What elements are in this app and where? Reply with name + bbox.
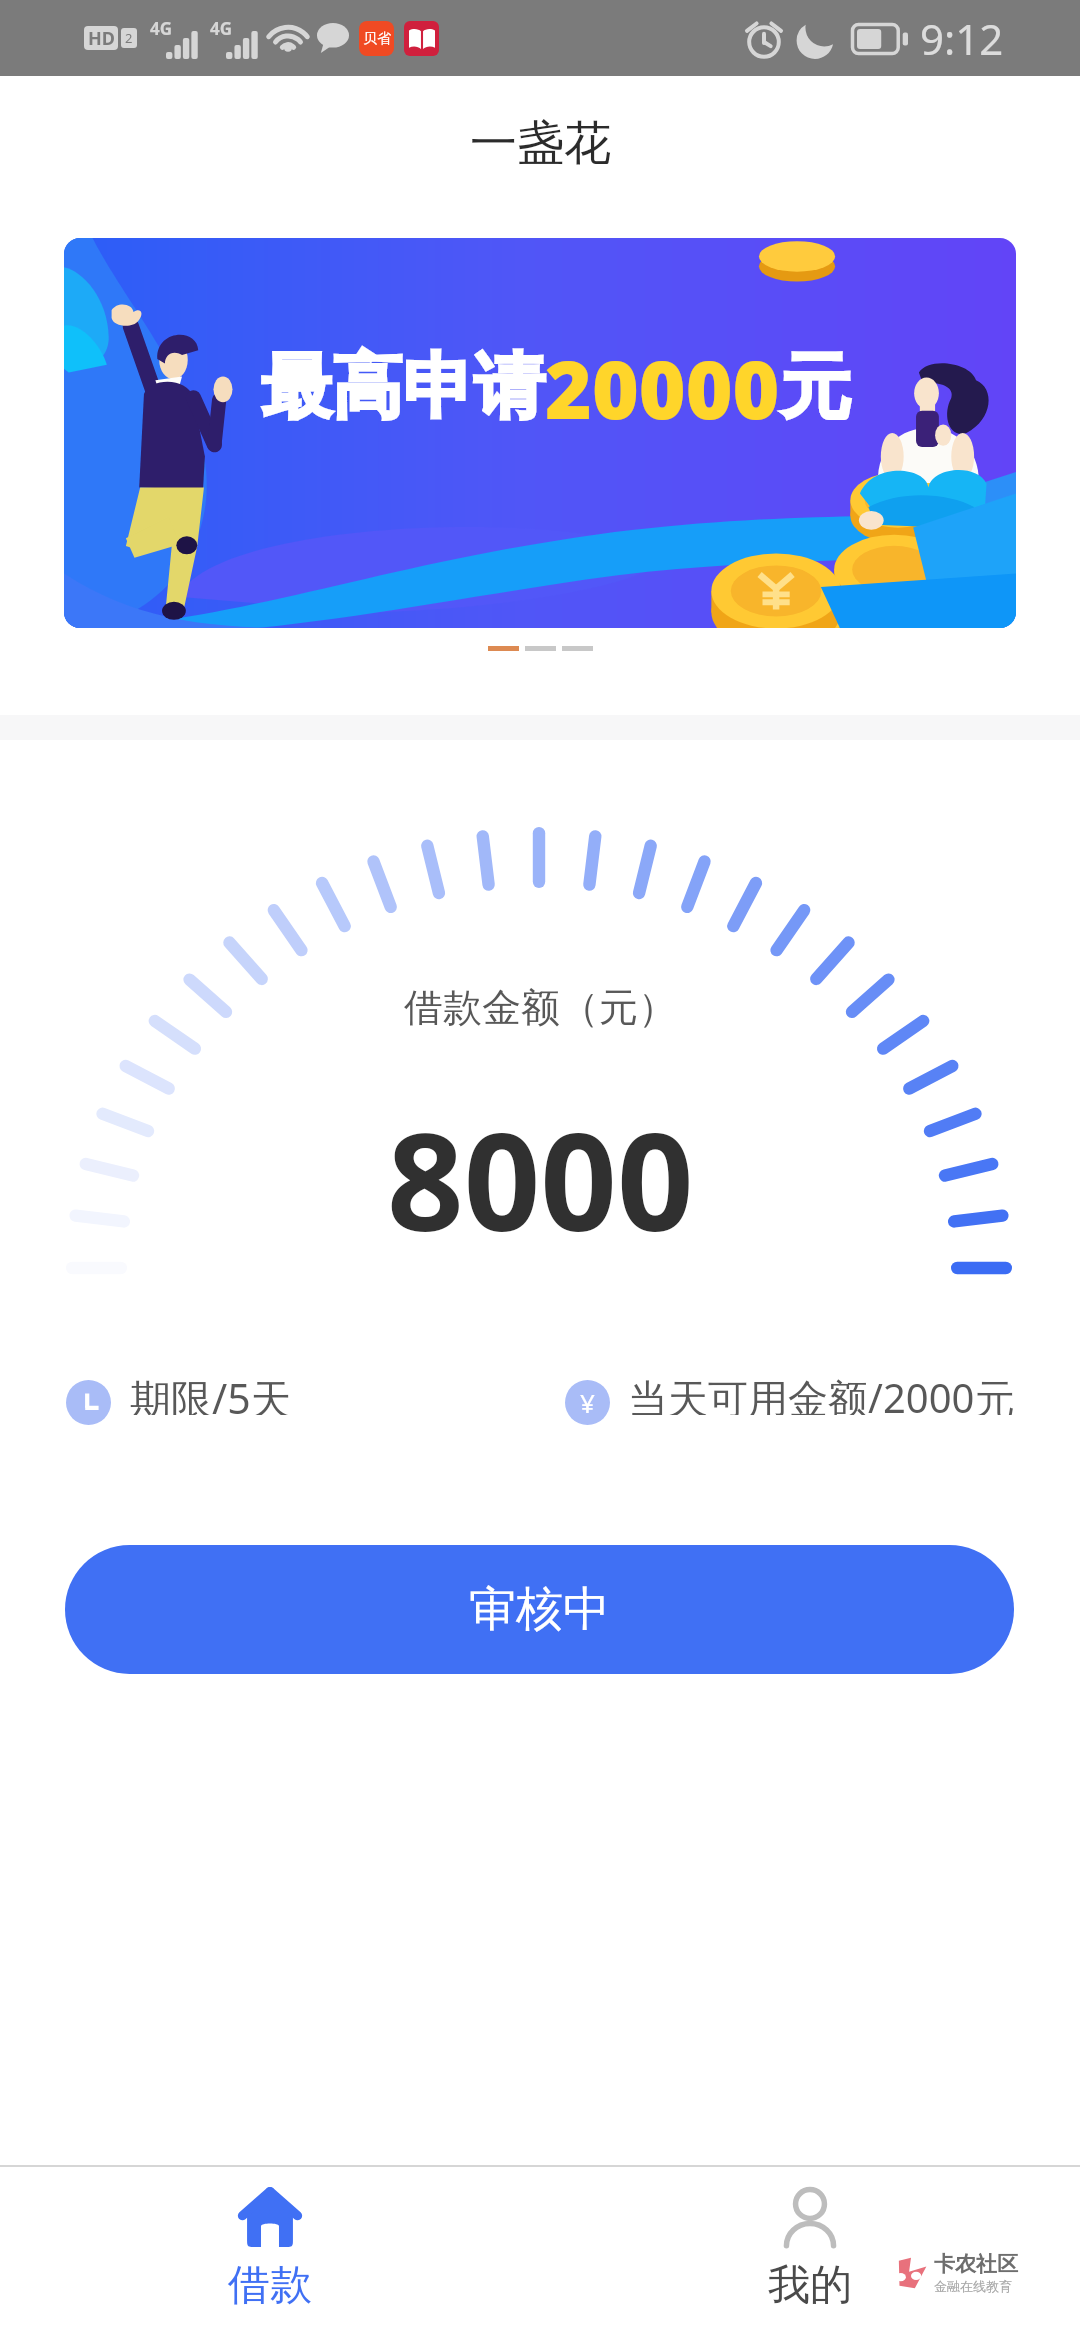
staticText: 审核中 xyxy=(469,1580,610,1639)
staticText: 期限/5天 xyxy=(130,1370,292,1415)
staticText: 4G xyxy=(150,17,173,40)
staticText: HD xyxy=(88,26,115,50)
staticText: 20000 xyxy=(545,333,780,442)
button[interactable]: 我的 xyxy=(718,2167,902,2322)
staticText: 一盏花 xyxy=(470,114,611,173)
button[interactable]: 审核中 xyxy=(65,1545,1014,1674)
staticText: 9:12 xyxy=(920,10,1004,67)
button[interactable]: 最高申请20000元 xyxy=(64,238,1016,628)
button[interactable]: 期限/5天 xyxy=(66,1380,292,1425)
staticText: 4G xyxy=(210,17,233,40)
staticText: 卡农社区 xyxy=(934,2251,1018,2277)
button[interactable]: 借款 xyxy=(178,2167,362,2322)
staticText: 贝省 xyxy=(363,30,391,48)
button[interactable]: ¥ xyxy=(565,1380,1015,1425)
staticText: 我的 xyxy=(768,2259,852,2312)
staticText: 2 xyxy=(125,29,133,47)
staticText: ¥ xyxy=(580,1385,595,1420)
staticText: 8000 xyxy=(387,1088,694,1271)
staticText: 借款 xyxy=(228,2259,312,2312)
staticText: 元 xyxy=(780,343,851,432)
staticText: 金融在线教育 xyxy=(934,2278,1012,2294)
staticText: 借款金额（元） xyxy=(404,983,677,1032)
staticText: 当天可用金额/2000元 xyxy=(628,1370,1015,1415)
staticText: 最高申请 xyxy=(261,343,545,432)
